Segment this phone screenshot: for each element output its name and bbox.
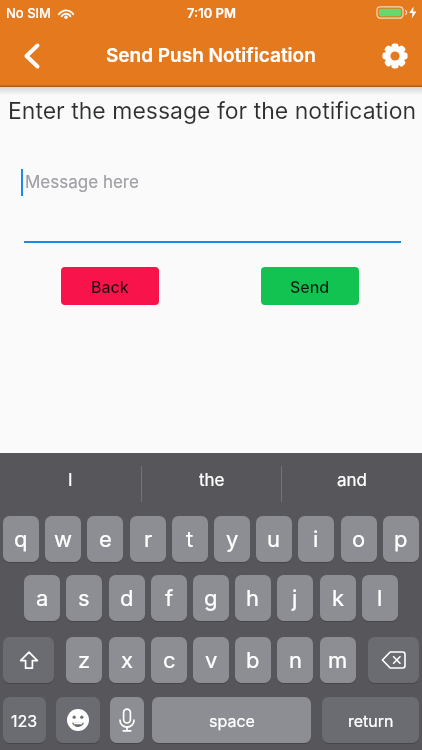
staticText: Back — [91, 277, 129, 296]
staticText: w — [54, 526, 73, 553]
staticText: g — [204, 585, 218, 612]
button[interactable]: b — [235, 637, 271, 683]
button[interactable] — [3, 637, 54, 683]
button[interactable]: e — [87, 516, 123, 562]
button[interactable]: v — [193, 637, 229, 683]
button[interactable]: Back — [61, 267, 159, 305]
button[interactable]: c — [151, 637, 187, 683]
staticText: v — [205, 647, 218, 674]
button[interactable]: w — [45, 516, 81, 562]
staticText: l — [377, 585, 383, 612]
button[interactable]: the — [142, 457, 282, 503]
staticText: y — [226, 526, 239, 553]
button[interactable]: q — [3, 516, 39, 562]
button[interactable] — [16, 160, 406, 243]
button[interactable]: i — [298, 516, 334, 562]
staticText: x — [121, 647, 134, 674]
staticText: c — [163, 647, 176, 674]
staticText: j — [292, 585, 298, 612]
button[interactable]: d — [109, 575, 145, 621]
button[interactable]: space — [152, 697, 311, 743]
staticText: k — [332, 585, 345, 612]
staticText: 7:10 PM — [187, 5, 236, 21]
staticText: space — [209, 711, 255, 730]
staticText: I — [68, 470, 73, 491]
button[interactable]: 123 — [3, 697, 46, 743]
button[interactable]: a — [24, 575, 60, 621]
staticText: u — [267, 526, 281, 553]
button[interactable]: s — [66, 575, 102, 621]
button[interactable]: j — [277, 575, 313, 621]
staticText: return — [348, 711, 394, 730]
button[interactable]: g — [193, 575, 229, 621]
staticText: h — [246, 585, 260, 612]
staticText: m — [328, 647, 348, 674]
button[interactable]: return — [322, 697, 419, 743]
staticText: f — [165, 585, 174, 612]
button[interactable]: n — [277, 637, 313, 683]
button[interactable] — [368, 637, 419, 683]
staticText: Enter the message for the notification — [8, 97, 417, 125]
staticText: e — [99, 526, 112, 553]
button[interactable]: z — [66, 637, 102, 683]
staticText: the — [199, 470, 225, 491]
button[interactable]: Send — [261, 267, 359, 305]
button[interactable] — [8, 30, 56, 81]
staticText: z — [78, 647, 91, 674]
button[interactable] — [110, 697, 144, 743]
staticText: Send Push Notification — [106, 44, 316, 67]
staticText: a — [36, 585, 49, 612]
button[interactable]: m — [320, 637, 356, 683]
staticText: r — [144, 526, 153, 553]
staticText: 123 — [11, 711, 38, 730]
button[interactable]: k — [320, 575, 356, 621]
staticText: Send — [290, 277, 330, 296]
staticText: Message here — [25, 172, 139, 193]
button[interactable] — [56, 697, 100, 743]
button[interactable]: y — [214, 516, 250, 562]
button[interactable] — [373, 34, 417, 78]
staticText: i — [313, 526, 319, 553]
staticText: t — [186, 526, 194, 553]
staticText: n — [289, 647, 302, 674]
staticText: d — [120, 585, 134, 612]
staticText: b — [246, 647, 260, 674]
button[interactable]: x — [109, 637, 145, 683]
button[interactable]: I — [0, 457, 141, 503]
staticText: No SIM — [6, 5, 51, 21]
button[interactable]: f — [151, 575, 187, 621]
staticText: q — [14, 526, 28, 553]
button[interactable]: l — [362, 575, 398, 621]
staticText: p — [394, 526, 408, 553]
button[interactable]: u — [256, 516, 292, 562]
button[interactable]: and — [282, 457, 422, 503]
button[interactable]: t — [172, 516, 208, 562]
staticText: o — [352, 526, 366, 553]
staticText: and — [337, 470, 367, 491]
button[interactable]: o — [341, 516, 377, 562]
button[interactable]: r — [130, 516, 166, 562]
staticText: s — [78, 585, 90, 612]
button[interactable]: h — [235, 575, 271, 621]
button[interactable]: p — [383, 516, 419, 562]
